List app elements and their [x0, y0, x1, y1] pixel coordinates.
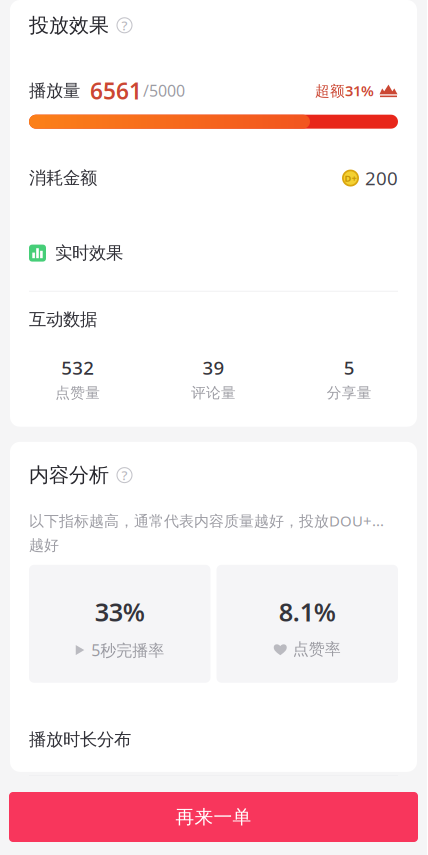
button[interactable]: 关于内容分析	[117, 468, 132, 483]
staticText: 5秒完播率	[91, 639, 164, 661]
button[interactable]: 再来一单	[9, 792, 418, 842]
staticText: 实时效果	[55, 242, 123, 264]
staticText: 点赞率	[293, 639, 341, 659]
staticText: 分享量	[327, 384, 372, 402]
staticText: 播放时长分布	[29, 729, 131, 750]
staticText: 越好	[29, 536, 59, 555]
staticText: 点赞量	[55, 384, 100, 402]
staticText: D+	[344, 172, 356, 184]
staticText: 内容分析	[29, 463, 109, 487]
staticText: 33%	[95, 595, 145, 628]
button[interactable]: 8.1%	[216, 565, 398, 683]
staticText: 播放量	[29, 80, 80, 101]
staticText: 200	[365, 166, 398, 190]
staticText: 评论量	[191, 384, 236, 402]
staticText: 39	[202, 355, 224, 380]
staticText: 5	[344, 355, 355, 380]
staticText: 超额31%	[315, 81, 374, 100]
staticText: 以下指标越高，通常代表内容质量越好，投放DOU+效果也	[29, 510, 398, 531]
button[interactable]: 33%	[29, 565, 210, 683]
button[interactable]: 关于投放效果	[117, 18, 132, 33]
staticText: 投放效果	[29, 13, 109, 38]
staticText: 消耗金额	[29, 167, 97, 189]
staticText: 6561	[90, 76, 142, 106]
staticText: 532	[61, 355, 94, 380]
staticText: 再来一单	[175, 805, 251, 828]
staticText: ?	[121, 466, 127, 484]
staticText: 互动数据	[29, 309, 97, 330]
staticText: ?	[121, 16, 127, 34]
staticText: 8.1%	[279, 595, 336, 628]
staticText: /5000	[143, 80, 185, 101]
button[interactable]: 实时效果	[10, 190, 417, 291]
